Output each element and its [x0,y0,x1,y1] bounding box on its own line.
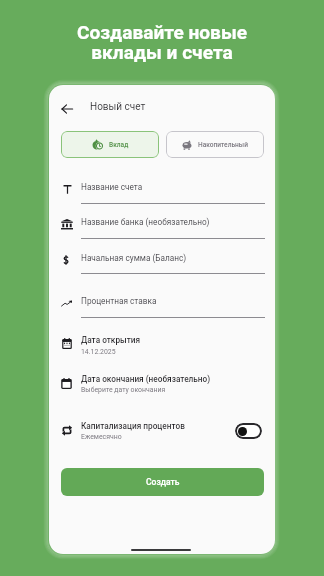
button[interactable]: Накопительный [166,131,264,158]
button[interactable]: Toggle interest capitalization [235,423,262,439]
button[interactable]: Back [54,96,79,121]
staticText: вклады и счета [0,41,324,63]
staticText: Дата открытия [81,335,141,345]
staticText: Капитализация процентов [81,421,185,431]
staticText: Процентная ставка [81,296,157,306]
button[interactable]: Создать [61,468,264,496]
staticText: Название банка (необязательно) [81,217,210,227]
staticText: Создавайте новые [0,21,324,43]
button[interactable]: Вклад [61,131,159,158]
staticText: 14.12.2025 [81,348,116,356]
staticText: Вклад [109,141,129,149]
staticText: Новый счет [90,101,146,113]
staticText: Начальная сумма (Баланс) [81,253,187,263]
staticText: Накопительный [198,141,248,149]
staticText: Ежемесячно [81,433,122,441]
staticText: Название счета [81,182,143,192]
staticText: Дата окончания (необязательно) [81,374,211,384]
staticText: Выберите дату окончания [81,386,166,394]
staticText: Создать [146,477,180,487]
